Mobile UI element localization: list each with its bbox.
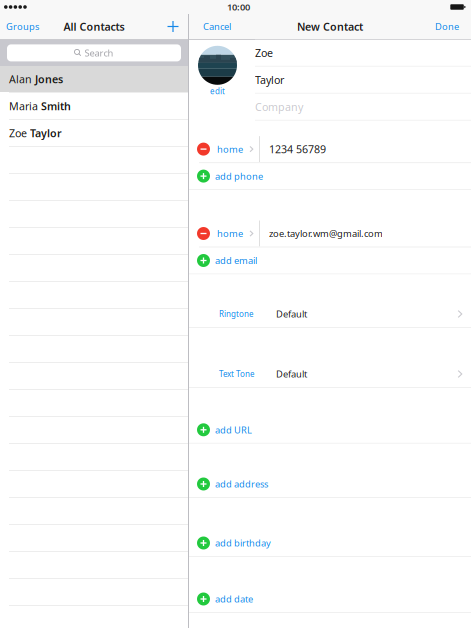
staticText: zoe.taylor.wm@gmail.com xyxy=(269,227,383,240)
button[interactable]: home xyxy=(210,227,253,240)
staticText: 1234 56789 xyxy=(269,142,326,156)
staticText: New Contact xyxy=(297,19,363,34)
button[interactable]: Remove home xyxy=(189,227,210,240)
staticText: Taylor xyxy=(255,73,284,87)
staticText: Alan Jones xyxy=(9,72,63,86)
button[interactable]: Alan Jones xyxy=(0,66,188,93)
staticText: Company xyxy=(255,100,303,114)
button[interactable]: Add contact xyxy=(162,16,188,36)
staticText: Groups xyxy=(6,20,39,33)
staticText: home xyxy=(217,227,243,240)
button[interactable]: Text Tone xyxy=(189,361,471,388)
staticText: Maria Smith xyxy=(9,99,71,113)
button[interactable]: add email xyxy=(189,247,471,274)
staticText: add date xyxy=(215,593,253,605)
staticText: add birthday xyxy=(215,537,271,549)
staticText: add address xyxy=(215,478,268,490)
staticText: Cancel xyxy=(203,20,231,33)
staticText: add URL xyxy=(215,424,252,436)
button[interactable]: Search xyxy=(7,44,181,61)
button[interactable]: Zoe Taylor xyxy=(0,120,188,147)
staticText: Text Tone xyxy=(219,369,255,379)
staticText: Zoe Taylor xyxy=(9,126,62,140)
button[interactable]: add address xyxy=(189,471,471,498)
button[interactable]: add URL xyxy=(189,417,471,444)
button[interactable]: add phone xyxy=(189,163,471,190)
staticText: Done xyxy=(435,20,459,33)
button[interactable]: add birthday xyxy=(189,530,471,557)
button[interactable]: edit xyxy=(210,86,225,96)
button[interactable]: Remove home xyxy=(189,143,210,156)
staticText: edit xyxy=(210,86,225,96)
staticText: Zoe xyxy=(255,46,273,60)
button[interactable]: Ringtone xyxy=(189,301,471,328)
staticText: Ringtone xyxy=(219,309,254,319)
staticText: Search xyxy=(84,47,113,59)
button[interactable]: Cancel xyxy=(189,14,235,39)
staticText: add email xyxy=(215,254,257,267)
staticText: home xyxy=(217,143,243,155)
staticText: All Contacts xyxy=(63,19,124,34)
button[interactable]: Groups xyxy=(0,14,43,39)
button[interactable]: Done xyxy=(431,14,471,39)
staticText: 10:00 xyxy=(227,1,250,13)
button[interactable]: Maria Smith xyxy=(0,93,188,120)
staticText: add phone xyxy=(215,170,263,182)
staticText: Default xyxy=(276,308,307,320)
button[interactable]: add date xyxy=(189,586,471,613)
button[interactable]: home xyxy=(210,143,253,155)
staticText: Default xyxy=(276,368,307,380)
